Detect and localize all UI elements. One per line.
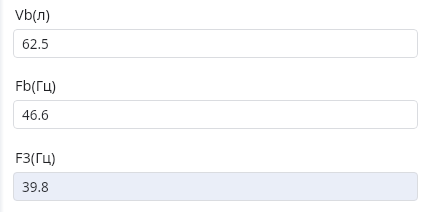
staticText: 62.5 [22,35,49,53]
button[interactable]: Fb(Гц) [13,100,418,129]
staticText: F3(Гц) [15,147,56,167]
button[interactable]: F3(Гц) [13,172,418,201]
staticText: 46.6 [22,106,49,124]
staticText: Fb(Гц) [15,75,56,95]
button[interactable]: Vb(л) [13,29,418,58]
staticText: 39.8 [22,178,49,196]
staticText: Vb(л) [15,4,50,24]
